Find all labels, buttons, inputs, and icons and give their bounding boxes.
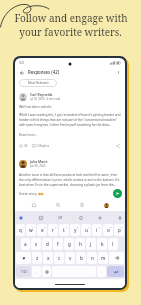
staticText: j xyxy=(90,241,92,247)
staticText: e xyxy=(41,227,44,233)
staticText: n xyxy=(91,255,94,261)
staticText: Follow and engage with xyxy=(14,11,128,25)
staticText: o xyxy=(107,227,110,233)
button[interactable]: Shift xyxy=(16,252,31,264)
staticText: g xyxy=(68,241,71,247)
staticText: Another issue is that all these products… xyxy=(19,172,121,187)
staticText: Great story xyxy=(19,191,37,196)
button[interactable]: Carl Reynolds xyxy=(15,92,125,101)
staticText: Well written article. xyxy=(19,104,53,109)
button[interactable]: More options xyxy=(114,68,123,77)
button[interactable]: b xyxy=(76,252,86,264)
button[interactable]: GIF xyxy=(56,213,64,221)
button[interactable]: l xyxy=(108,238,118,250)
button[interactable]: t xyxy=(59,224,69,236)
staticText: 3 xyxy=(44,225,46,228)
button[interactable]: Settings xyxy=(96,214,103,221)
staticText: i xyxy=(96,227,98,233)
staticText: u xyxy=(85,227,88,233)
button[interactable]: f xyxy=(53,238,63,250)
staticText: q xyxy=(19,227,22,233)
button[interactable]: . xyxy=(97,266,106,277)
button[interactable]: Backspace xyxy=(109,252,124,264)
button[interactable]: Search xyxy=(53,200,63,210)
staticText: 36 xyxy=(24,144,28,148)
button[interactable]: i xyxy=(92,224,102,236)
button[interactable]: u xyxy=(81,224,91,236)
staticText: k xyxy=(101,241,104,247)
button[interactable]: Google assistant xyxy=(17,214,24,221)
staticText: 9:41 xyxy=(19,61,25,65)
button[interactable]: h xyxy=(75,238,85,250)
button[interactable]: Stickers xyxy=(37,214,44,221)
button[interactable]: Emoji xyxy=(42,266,51,277)
staticText: y xyxy=(74,227,77,233)
button[interactable]: v xyxy=(65,252,75,264)
staticText: Jun 06, 2023 xyxy=(30,164,46,168)
staticText: GIF xyxy=(58,216,63,219)
staticText: , xyxy=(36,270,37,274)
staticText: x xyxy=(47,255,50,261)
button[interactable]: x xyxy=(43,252,53,264)
button[interactable]: j xyxy=(86,238,96,250)
button[interactable]: 36 xyxy=(19,144,28,148)
button[interactable]: w xyxy=(26,224,36,236)
button[interactable]: m xyxy=(98,252,108,264)
staticText: While I was reading this, I got reminded… xyxy=(19,112,121,127)
staticText: m xyxy=(101,255,106,261)
staticText: p xyxy=(118,227,121,233)
button[interactable]: o xyxy=(103,224,113,236)
button[interactable]: y xyxy=(70,224,80,236)
staticText: 0 xyxy=(121,225,123,228)
staticText: b xyxy=(80,255,83,261)
button[interactable]: Most Relevant xyxy=(19,79,57,87)
button[interactable]: Enter xyxy=(107,266,124,277)
button[interactable]: n xyxy=(87,252,97,264)
button[interactable]: e xyxy=(37,224,47,236)
staticText: r xyxy=(52,227,54,233)
staticText: Responses (42) xyxy=(28,69,60,75)
button[interactable]: g xyxy=(64,238,74,250)
staticText: 2 xyxy=(33,225,35,228)
staticText: f xyxy=(57,241,59,247)
button[interactable]: Julia Marie xyxy=(15,159,125,168)
button[interactable]: Microphone xyxy=(116,214,123,221)
staticText: Julia Marie xyxy=(30,159,48,164)
button[interactable]: p xyxy=(114,224,124,236)
button[interactable]: s xyxy=(31,238,41,250)
staticText: 5 xyxy=(66,225,68,228)
staticText: 8 xyxy=(99,225,101,228)
staticText: 1 xyxy=(22,225,24,228)
button[interactable]: r xyxy=(48,224,58,236)
button[interactable]: d xyxy=(42,238,52,250)
button[interactable]: a xyxy=(21,238,30,250)
staticText: w xyxy=(29,227,33,233)
staticText: Jul 18, 2023 · 4 min read xyxy=(30,97,61,101)
staticText: 3 Replies xyxy=(37,144,50,148)
button[interactable]: Bookmarks xyxy=(77,200,87,210)
staticText: Carl Reynolds xyxy=(30,92,53,97)
button[interactable]: , xyxy=(32,266,41,277)
button[interactable]: Back xyxy=(17,68,26,77)
button[interactable]: Share xyxy=(115,143,121,149)
button[interactable]: Profile xyxy=(101,200,111,210)
staticText: h xyxy=(79,241,82,247)
staticText: 6 xyxy=(77,225,79,228)
staticText: . xyxy=(101,270,102,274)
button[interactable]: ?123 xyxy=(16,266,31,277)
button[interactable]: k xyxy=(97,238,107,250)
staticText: your favorite writers. xyxy=(19,25,122,39)
button[interactable]: Clipboard xyxy=(77,214,84,221)
button[interactable]: c xyxy=(54,252,64,264)
button[interactable]: Read more... xyxy=(19,133,38,137)
button[interactable]: 3 Replies xyxy=(32,144,50,148)
button[interactable]: q xyxy=(16,224,25,236)
staticText: ?123 xyxy=(21,270,27,274)
staticText: t xyxy=(63,227,65,233)
staticText: 4 xyxy=(55,225,57,228)
button[interactable]: Home xyxy=(29,200,39,210)
staticText: 7 xyxy=(88,225,90,228)
button[interactable]: Send xyxy=(113,189,122,198)
button[interactable]: z xyxy=(32,252,42,264)
